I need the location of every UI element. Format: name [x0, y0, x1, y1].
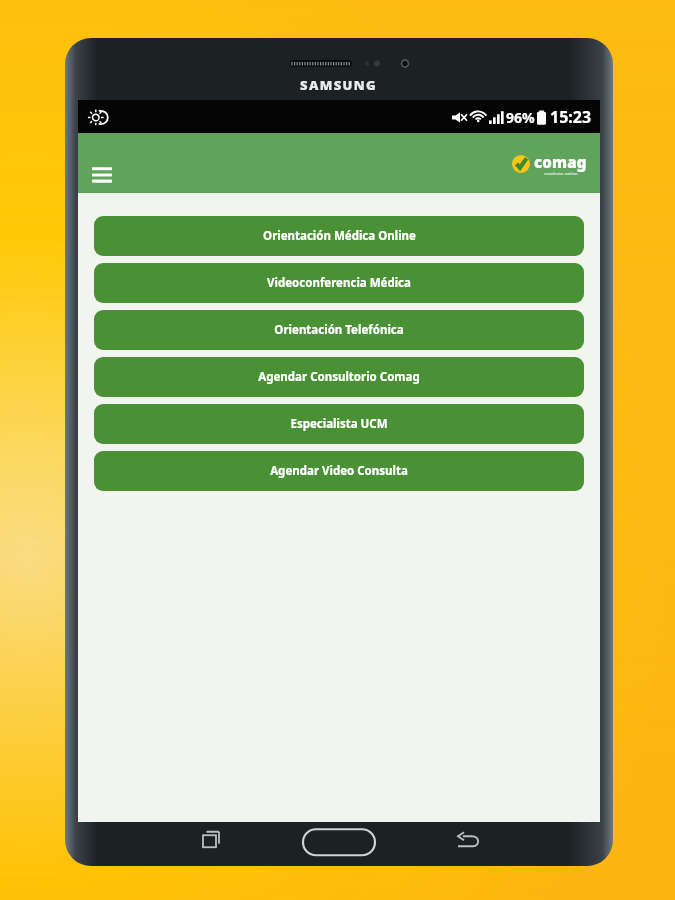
button[interactable]: Open menu [89, 161, 115, 187]
button[interactable]: Agendar Video Consulta [94, 451, 584, 491]
staticText: 96% [506, 108, 535, 127]
staticText: 15:23 [550, 106, 592, 128]
staticText: Agendar Video Consulta [270, 463, 408, 479]
button[interactable]: Videoconferencia Médica [94, 263, 584, 303]
staticText: comag [534, 152, 587, 172]
button[interactable]: Orientación Médica Online [94, 216, 584, 256]
staticText: Orientación Telefónica [274, 322, 404, 338]
button[interactable]: Agendar Consultorio Comag [94, 357, 584, 397]
button[interactable]: Orientación Telefónica [94, 310, 584, 350]
staticText: Orientación Médica Online [263, 228, 416, 244]
staticText: SAMSUNG [300, 76, 378, 94]
staticText: Especialista UCM [290, 416, 388, 432]
staticText: Agendar Consultorio Comag [258, 369, 420, 385]
button[interactable]: Especialista UCM [94, 404, 584, 444]
staticText: Videoconferencia Médica [267, 275, 411, 291]
staticText: consultorios medicos [544, 172, 578, 176]
